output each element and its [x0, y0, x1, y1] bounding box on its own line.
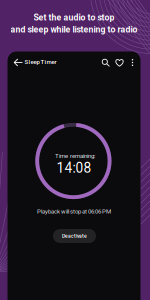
button[interactable]: Search: [97, 54, 113, 70]
button[interactable]: More options: [126, 54, 138, 70]
button[interactable]: Favourite: [111, 54, 127, 70]
staticText: Sleep Timer: [24, 58, 56, 65]
button[interactable]: Deactivate: [53, 229, 96, 243]
staticText: Set the audio to stop: [33, 12, 114, 22]
staticText: 14:08: [56, 160, 91, 176]
staticText: Time remaining:: [55, 152, 95, 159]
button[interactable]: Sleep Timer: [23, 54, 57, 70]
staticText: Playback will stop at 06:06 PM: [37, 208, 111, 215]
button[interactable]: Back: [9, 53, 27, 71]
staticText: Deactivate: [62, 233, 87, 239]
staticText: and sleep while listening to radio: [10, 24, 137, 35]
